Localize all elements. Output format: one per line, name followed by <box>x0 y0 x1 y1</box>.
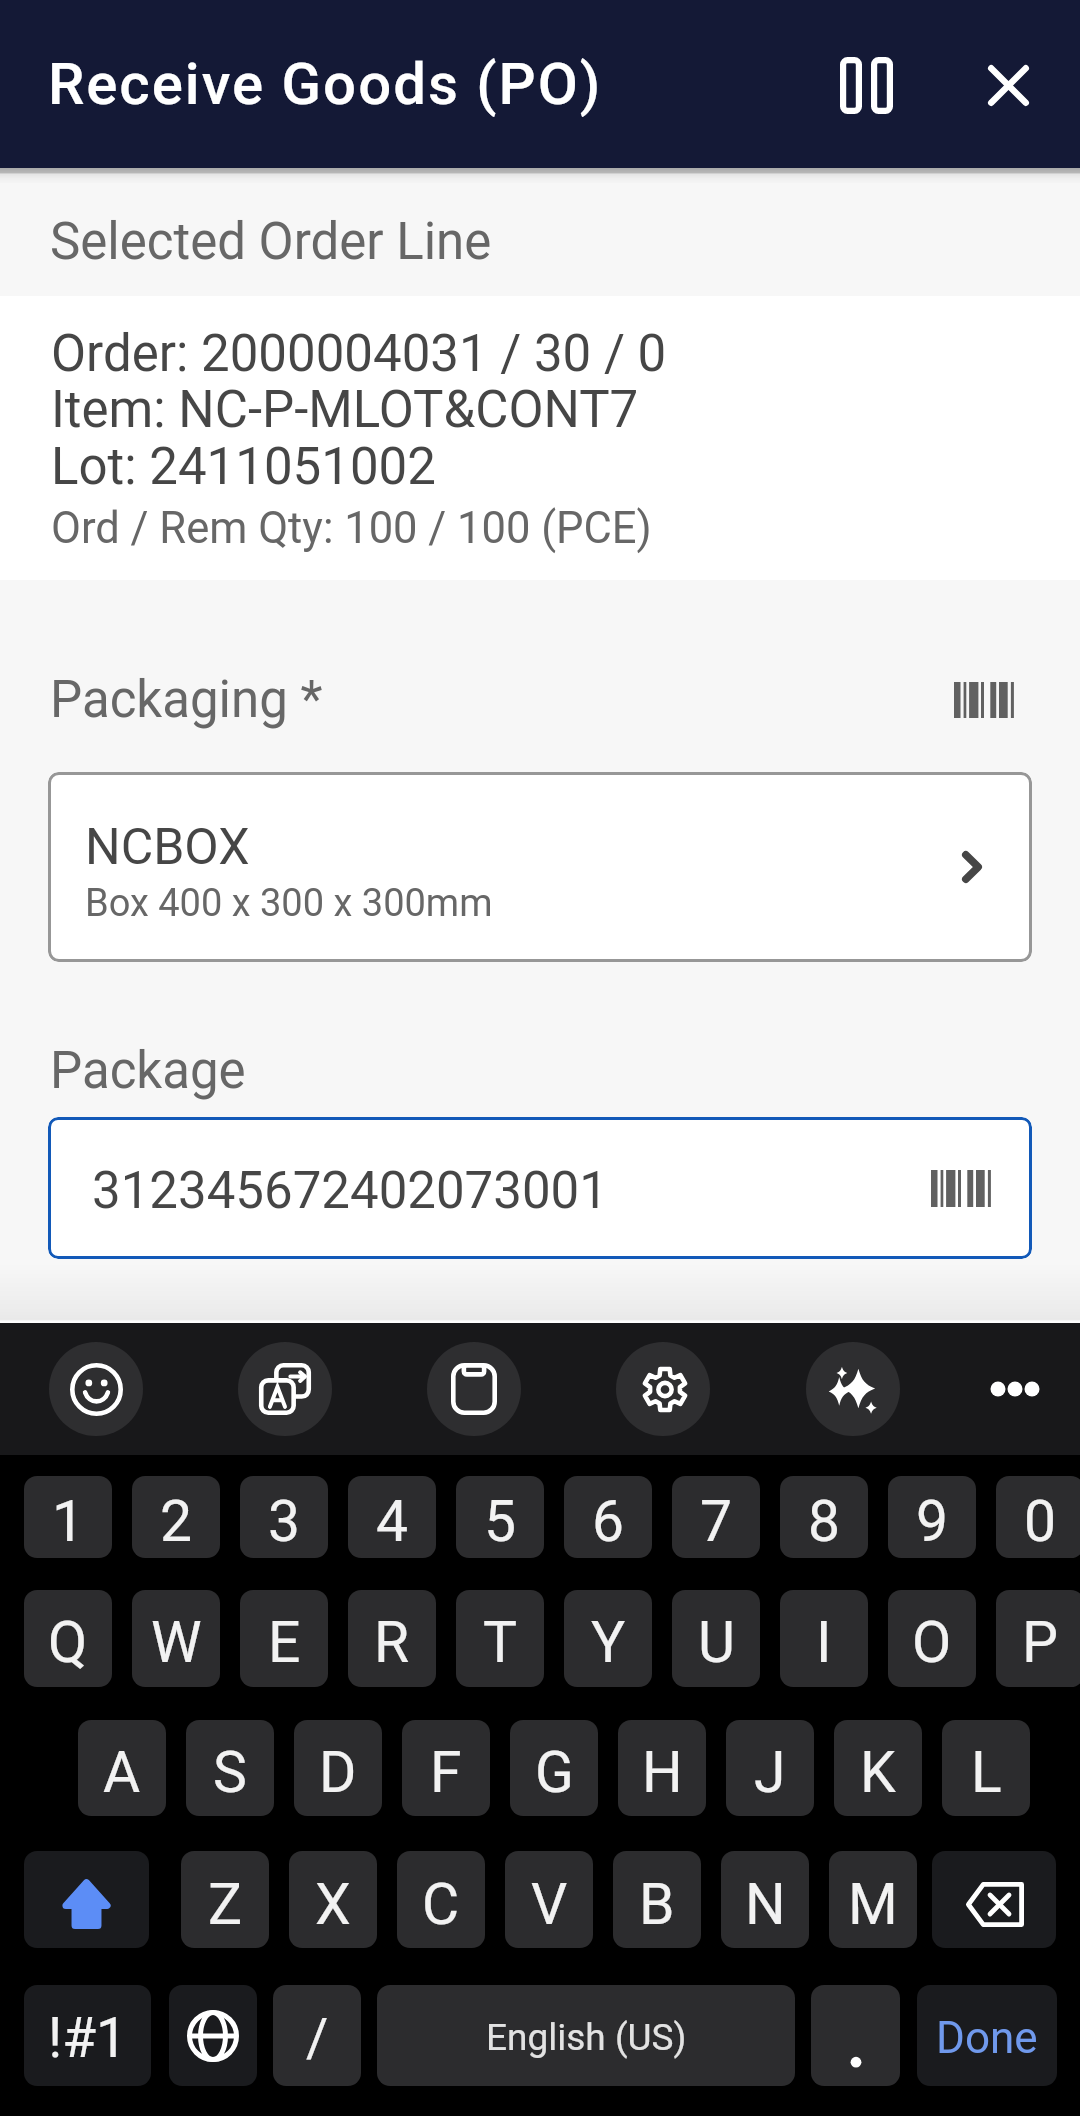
button[interactable]: N <box>721 1851 809 1948</box>
staticText: K <box>860 1739 896 1806</box>
button[interactable]: M <box>829 1851 917 1948</box>
button[interactable]: 312345672402073001 <box>48 1117 1032 1259</box>
button[interactable]: Z <box>181 1851 269 1948</box>
staticText: Ord / Rem Qty: 100 / 100 (PCE) <box>51 503 652 554</box>
staticText: S <box>213 1739 247 1806</box>
button[interactable]: K <box>834 1720 922 1816</box>
staticText: 7 <box>700 1488 733 1555</box>
staticText: Box 400 x 300 x 300mm <box>85 881 493 926</box>
staticText: 2 <box>160 1488 193 1555</box>
staticText: Receive Goods (PO) <box>48 50 603 118</box>
staticText: Packaging * <box>50 670 323 730</box>
button[interactable]: Change keyboard language <box>169 1985 257 2086</box>
button[interactable]: V <box>505 1851 593 1948</box>
staticText: 4 <box>376 1488 409 1555</box>
button[interactable]: Clipboard <box>427 1342 521 1436</box>
staticText: J <box>754 1739 786 1806</box>
staticText: X <box>315 1871 351 1938</box>
staticText: F <box>430 1739 462 1806</box>
staticText: R <box>374 1609 410 1676</box>
button[interactable]: 5 <box>456 1476 544 1558</box>
button[interactable]: J <box>726 1720 814 1816</box>
button[interactable]: 9 <box>888 1476 976 1558</box>
button[interactable]: 7 <box>672 1476 760 1558</box>
staticText: U <box>698 1609 735 1676</box>
button[interactable]: English (US) <box>377 1985 795 2086</box>
staticText: 312345672402073001 <box>92 1161 608 1221</box>
button[interactable]: 8 <box>780 1476 868 1558</box>
button[interactable]: More options <box>968 1342 1062 1436</box>
button[interactable]: S <box>186 1720 274 1816</box>
button[interactable]: T <box>456 1590 544 1687</box>
staticText: L <box>971 1739 1002 1806</box>
button[interactable]: F <box>402 1720 490 1816</box>
staticText: 3 <box>268 1488 301 1555</box>
staticText: N <box>745 1871 786 1938</box>
button[interactable]: D <box>294 1720 382 1816</box>
staticText: T <box>483 1609 518 1676</box>
button[interactable]: H <box>618 1720 706 1816</box>
staticText: English (US) <box>486 2016 687 2059</box>
staticText: H <box>642 1739 683 1806</box>
button[interactable]: / <box>273 1985 361 2086</box>
staticText: 6 <box>592 1488 625 1555</box>
button[interactable]: X <box>289 1851 377 1948</box>
button[interactable]: !#1 <box>24 1985 151 2086</box>
button[interactable]: P <box>996 1590 1080 1687</box>
staticText: Package <box>50 1041 246 1101</box>
button[interactable]: C <box>397 1851 485 1948</box>
button[interactable]: G <box>510 1720 598 1816</box>
button[interactable]: AI assist <box>806 1342 900 1436</box>
staticText: C <box>422 1871 460 1938</box>
staticText: V <box>531 1871 568 1938</box>
button[interactable]: Y <box>564 1590 652 1687</box>
button[interactable]: 6 <box>564 1476 652 1558</box>
button[interactable]: U <box>672 1590 760 1687</box>
staticText: W <box>151 1609 202 1676</box>
button[interactable]: W <box>132 1590 220 1687</box>
button[interactable]: Backspace <box>932 1851 1056 1948</box>
staticText: M <box>848 1871 898 1938</box>
staticText: Y <box>591 1609 626 1676</box>
staticText: !#1 <box>48 2006 127 2070</box>
button[interactable]: Emoji <box>49 1342 143 1436</box>
button[interactable]: Scan package barcode <box>913 1148 1009 1228</box>
button[interactable]: 0 <box>996 1476 1080 1558</box>
button[interactable]: Q <box>24 1590 112 1687</box>
button[interactable]: I <box>780 1590 868 1687</box>
staticText: A <box>103 1739 141 1806</box>
button[interactable]: 3 <box>240 1476 328 1558</box>
staticText: B <box>639 1871 675 1938</box>
button[interactable]: Close <box>952 29 1064 141</box>
button[interactable]: 4 <box>348 1476 436 1558</box>
button[interactable]: 1 <box>24 1476 112 1558</box>
button[interactable]: L <box>942 1720 1030 1816</box>
button[interactable]: B <box>613 1851 701 1948</box>
staticText: Z <box>208 1871 243 1938</box>
button[interactable]: R <box>348 1590 436 1687</box>
button[interactable]: A <box>78 1720 166 1816</box>
staticText: G <box>535 1739 574 1806</box>
button[interactable]: NCBOX <box>48 772 1032 962</box>
button[interactable]: Scan packaging barcode <box>936 664 1032 736</box>
staticText: 1 <box>52 1488 85 1555</box>
staticText: Order: 2000004031 / 30 / 0 <box>51 324 667 384</box>
staticText: Done <box>936 2012 1038 2064</box>
staticText: P <box>1022 1609 1058 1676</box>
button[interactable]: Keyboard settings <box>616 1342 710 1436</box>
staticText: O <box>912 1609 952 1676</box>
button[interactable]: Split screen <box>808 29 920 141</box>
staticText: E <box>268 1609 301 1676</box>
staticText: 9 <box>916 1488 949 1555</box>
staticText: NCBOX <box>85 818 250 877</box>
staticText: 8 <box>808 1488 841 1555</box>
button[interactable]: Translate <box>238 1342 332 1436</box>
staticText: 0 <box>1024 1488 1057 1555</box>
button[interactable]: E <box>240 1590 328 1687</box>
staticText: Lot: 2411051002 <box>51 437 436 497</box>
button[interactable] <box>811 1985 900 2086</box>
button[interactable]: O <box>888 1590 976 1687</box>
button[interactable]: Shift <box>24 1851 149 1948</box>
button[interactable]: 2 <box>132 1476 220 1558</box>
button[interactable]: Done <box>917 1985 1057 2086</box>
